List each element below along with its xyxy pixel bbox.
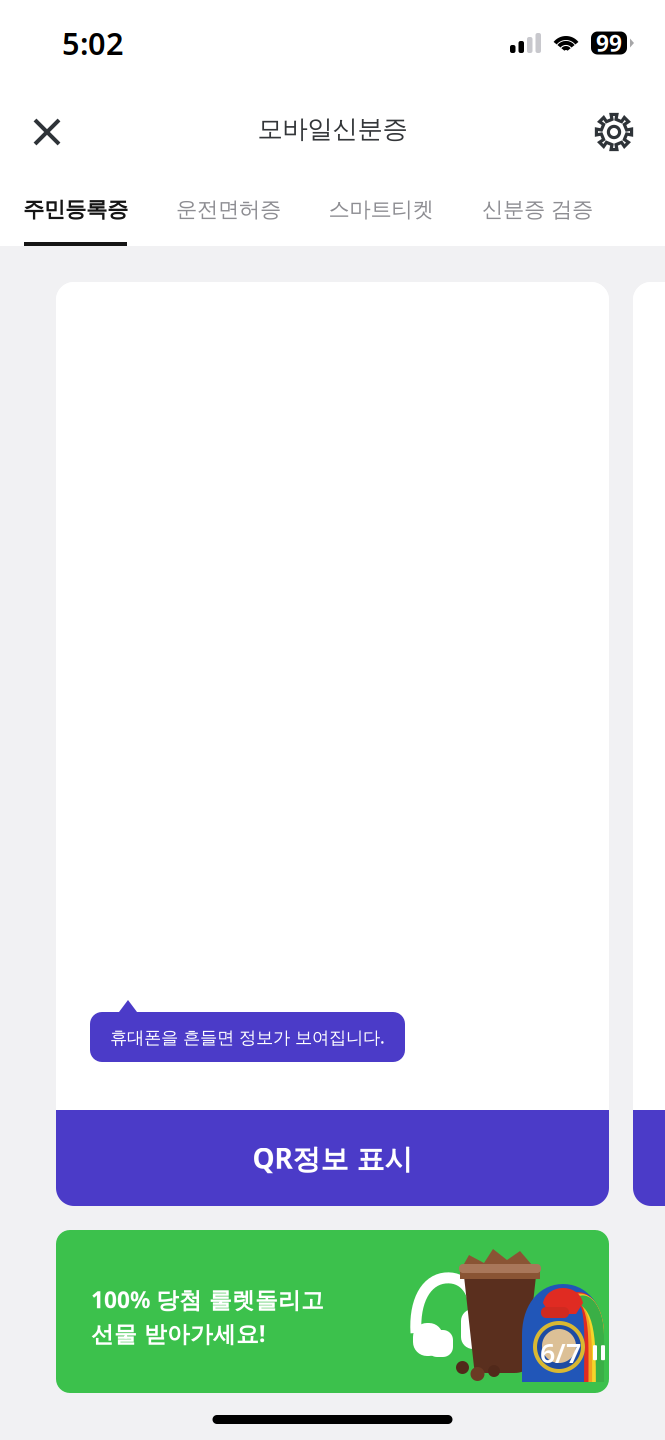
- staticText: 100% 당첨 룰렛돌리고: [91, 1284, 324, 1314]
- button[interactable]: 신분증 검증: [482, 177, 643, 247]
- staticText: 99: [596, 28, 622, 58]
- staticText: 운전면허증: [176, 196, 281, 223]
- button[interactable]: 스마트티켓: [330, 177, 482, 247]
- button[interactable]: QR정보 표시: [633, 1110, 665, 1206]
- staticText: 휴대폰을 흔들면 정보가 보여집니다.: [110, 1025, 385, 1048]
- button[interactable]: QR정보 표시: [56, 1110, 609, 1206]
- staticText: 6/7: [540, 1335, 581, 1370]
- button[interactable]: 주민등록증: [24, 177, 177, 247]
- staticText: QR정보 표시: [252, 1139, 412, 1177]
- staticText: 주민등록증: [23, 196, 128, 223]
- staticText: 스마트티켓: [328, 196, 433, 223]
- button[interactable]: 설정: [579, 97, 649, 167]
- button[interactable]: 닫기: [12, 97, 82, 167]
- button[interactable]: 운전면허증: [177, 177, 330, 247]
- staticText: 모바일신분증: [257, 113, 407, 144]
- button[interactable]: 100% 당첨 룰렛돌리고: [56, 1230, 609, 1393]
- staticText: 5:02: [62, 23, 124, 63]
- staticText: 선물 받아가세요!: [91, 1318, 265, 1349]
- staticText: 신분증 검증: [482, 196, 593, 223]
